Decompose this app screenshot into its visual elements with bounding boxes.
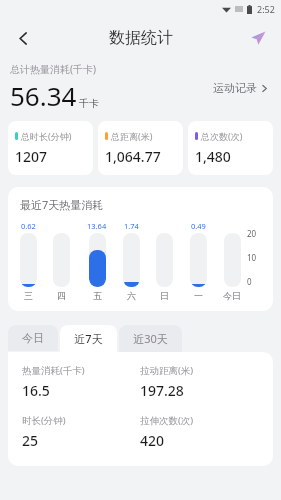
button[interactable]: 近7天 [60,325,117,352]
staticText: 1,064.77 [105,147,161,166]
button[interactable]: 总时长(分钟) [8,121,93,175]
button[interactable]: 热量消耗(千卡) [8,352,273,466]
staticText: 拉动距离(米) [140,364,194,377]
button[interactable]: Back [6,21,40,55]
staticText: 0.49 [191,221,206,231]
staticText: 0.62 [21,221,36,231]
staticText: 总距离(米) [111,130,153,142]
staticText: 一 [194,290,203,301]
staticText: 热量消耗(千卡) [22,364,85,377]
staticText: 五 [93,290,102,301]
staticText: 最近7天热量消耗 [20,197,104,212]
staticText: 今日 [22,331,44,345]
staticText: 总次数(次) [201,130,243,142]
button[interactable]: 近30天 [119,325,182,352]
button[interactable]: 运动记录 [211,77,271,99]
staticText: 1.74 [124,221,139,231]
staticText: 近7天 [74,331,103,346]
staticText: 2:52 [257,3,275,15]
staticText: 总计热量消耗(千卡) [10,62,96,76]
staticText: 日 [160,290,169,301]
button[interactable]: 总次数(次) [188,121,273,175]
staticText: 数据统计 [109,28,173,48]
staticText: 时长(分钟) [22,414,66,427]
staticText: 20 [247,228,257,239]
staticText: 420 [140,431,165,450]
staticText: 运动记录 [213,81,257,95]
staticText: 三 [24,290,33,301]
staticText: 近30天 [133,331,168,346]
staticText: 10 [247,252,257,263]
staticText: 四 [57,290,66,301]
staticText: 197.28 [140,381,184,400]
staticText: 16.5 [22,381,50,400]
staticText: 1,480 [195,147,231,166]
staticText: 总时长(分钟) [21,130,72,142]
button[interactable]: 最近7天热量消耗 [8,187,273,311]
staticText: 25 [22,431,39,450]
staticText: 六 [127,290,136,301]
staticText: 1207 [15,147,48,166]
staticText: 今日 [223,290,241,301]
button[interactable]: 今日 [8,325,58,351]
staticText: 拉伸次数(次) [140,414,194,427]
button[interactable]: 总距离(米) [98,121,183,175]
staticText: 56.34 [10,78,77,113]
staticText: 0 [247,276,252,287]
staticText: 13.64 [87,221,107,231]
staticText: 千卡 [79,97,99,110]
button[interactable]: Share [241,21,275,55]
